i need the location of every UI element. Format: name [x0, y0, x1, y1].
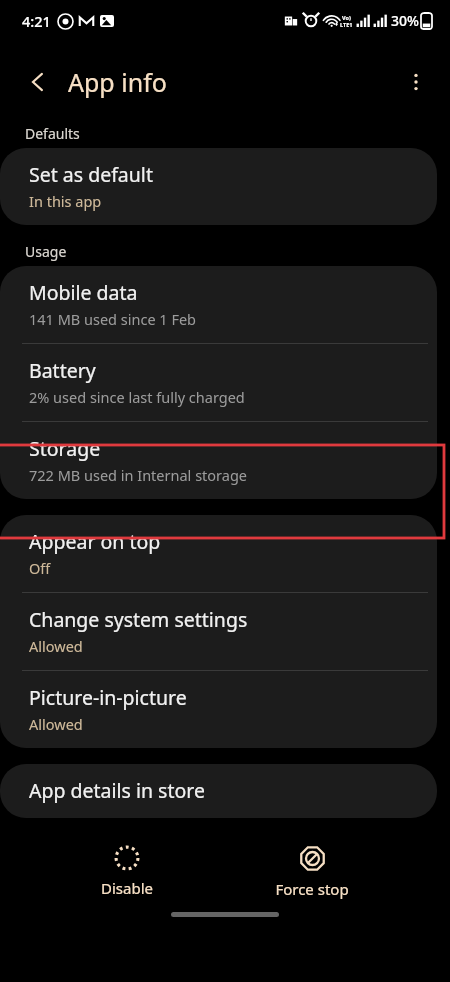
- other: Disable: [114, 845, 140, 871]
- staticText: LTE1: [340, 21, 353, 28]
- staticText: Vo): [342, 14, 351, 21]
- button[interactable]: Storage: [0, 422, 437, 499]
- button[interactable]: Battery: [0, 344, 437, 421]
- staticText: App details in store: [29, 777, 205, 804]
- staticText: In this app: [29, 191, 102, 211]
- staticText: 2% used since last fully charged: [29, 387, 245, 407]
- button[interactable]: App details in store: [0, 764, 437, 818]
- button[interactable]: Mobile data: [0, 266, 437, 343]
- button[interactable]: More options: [392, 58, 440, 106]
- staticText: 4:21: [22, 11, 51, 31]
- button[interactable]: Disable: [79, 843, 175, 900]
- staticText: Disable: [101, 878, 153, 898]
- button[interactable]: Picture-in-picture: [0, 671, 437, 748]
- staticText: Allowed: [29, 714, 83, 734]
- staticText: 141 MB used since 1 Feb: [29, 309, 197, 329]
- staticText: Change system settings: [29, 606, 248, 633]
- staticText: 722 MB used in Internal storage: [29, 465, 248, 485]
- staticText: Defaults: [25, 124, 80, 143]
- button[interactable]: Force stop: [253, 843, 371, 901]
- staticText: Force stop: [275, 879, 349, 899]
- staticText: Allowed: [29, 636, 83, 656]
- staticText: 30%: [391, 11, 419, 30]
- staticText: App info: [68, 65, 167, 99]
- staticText: Set as default: [29, 161, 153, 188]
- staticText: Picture-in-picture: [29, 684, 187, 711]
- button[interactable]: Appear on top: [0, 515, 437, 592]
- staticText: Appear on top: [29, 528, 161, 555]
- staticText: Off: [29, 558, 51, 578]
- staticText: Usage: [25, 242, 67, 261]
- button[interactable]: Change system settings: [0, 593, 437, 670]
- button[interactable]: Back: [14, 58, 62, 106]
- other: Force stop: [299, 845, 326, 872]
- staticText: Battery: [29, 357, 96, 384]
- button[interactable]: Set as default: [0, 148, 437, 225]
- staticText: Storage: [29, 435, 101, 462]
- staticText: Mobile data: [29, 279, 138, 306]
